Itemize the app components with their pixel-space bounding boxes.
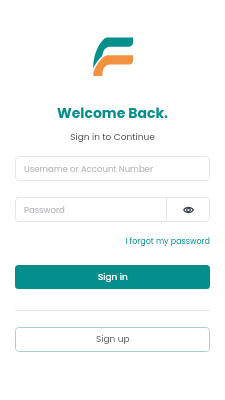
staticText: Sign in to Continue <box>0 131 225 144</box>
staticText: Sign in <box>98 271 128 284</box>
staticText: Welcome Back. <box>0 103 225 123</box>
staticText: Password <box>24 204 65 216</box>
staticText: Sign up <box>96 333 130 346</box>
button[interactable]: I forgot my password <box>15 236 210 247</box>
button[interactable]: Sign in <box>15 265 210 289</box>
staticText: Username or Account Number <box>24 163 154 175</box>
button[interactable]: Show password <box>167 197 210 222</box>
button[interactable]: Sign up <box>15 327 210 352</box>
button[interactable]: Password <box>15 197 166 222</box>
button[interactable]: Username or Account Number <box>15 156 210 181</box>
